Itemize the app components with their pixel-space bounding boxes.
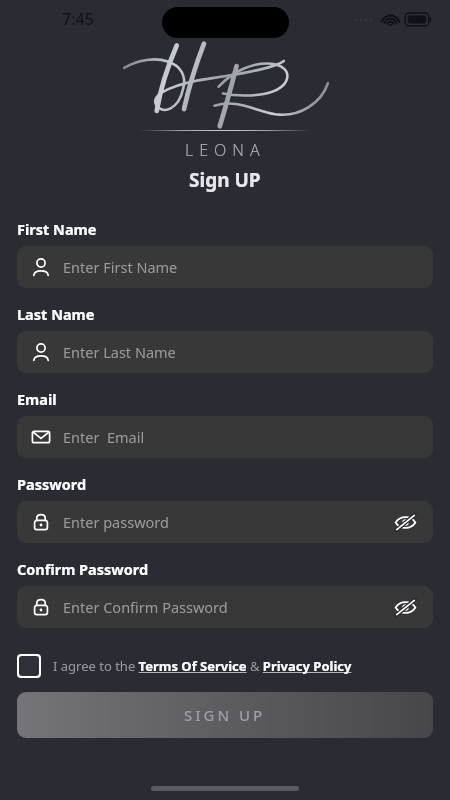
button[interactable]: Enter password	[17, 501, 433, 543]
staticText: I agree to the Terms Of Service & Privac…	[53, 657, 352, 675]
button[interactable]: Enter Confirm Password	[17, 586, 433, 628]
staticText: Last Name	[17, 304, 95, 324]
staticText: Enter Confirm Password	[63, 597, 391, 617]
button[interactable]: Enter Last Name	[17, 331, 433, 373]
staticText: First Name	[17, 219, 97, 239]
staticText: Enter Last Name	[63, 342, 419, 362]
staticText: Confirm Password	[17, 559, 149, 579]
staticText: Password	[17, 474, 87, 494]
button[interactable]: Enter Email	[17, 416, 433, 458]
other: Agree to terms checkbox	[19, 656, 39, 676]
button[interactable]: SIGN UP	[17, 692, 433, 738]
button[interactable]: Agree to terms checkbox	[17, 654, 433, 678]
staticText: LEONA	[185, 139, 266, 161]
button[interactable]: Toggle password visibility	[391, 508, 419, 536]
staticText: SIGN UP	[184, 705, 266, 725]
staticText: Enter Email	[63, 427, 419, 447]
staticText: Enter First Name	[63, 257, 419, 277]
staticText: Sign UP	[189, 167, 261, 193]
button[interactable]: Toggle password visibility	[391, 593, 419, 621]
button[interactable]: Enter First Name	[17, 246, 433, 288]
staticText: Email	[17, 389, 57, 409]
staticText: 7:45	[62, 8, 94, 30]
staticText: Enter password	[63, 512, 391, 532]
